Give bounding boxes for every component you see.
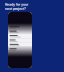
staticText: Ready for your next project? bbox=[5, 2, 28, 11]
